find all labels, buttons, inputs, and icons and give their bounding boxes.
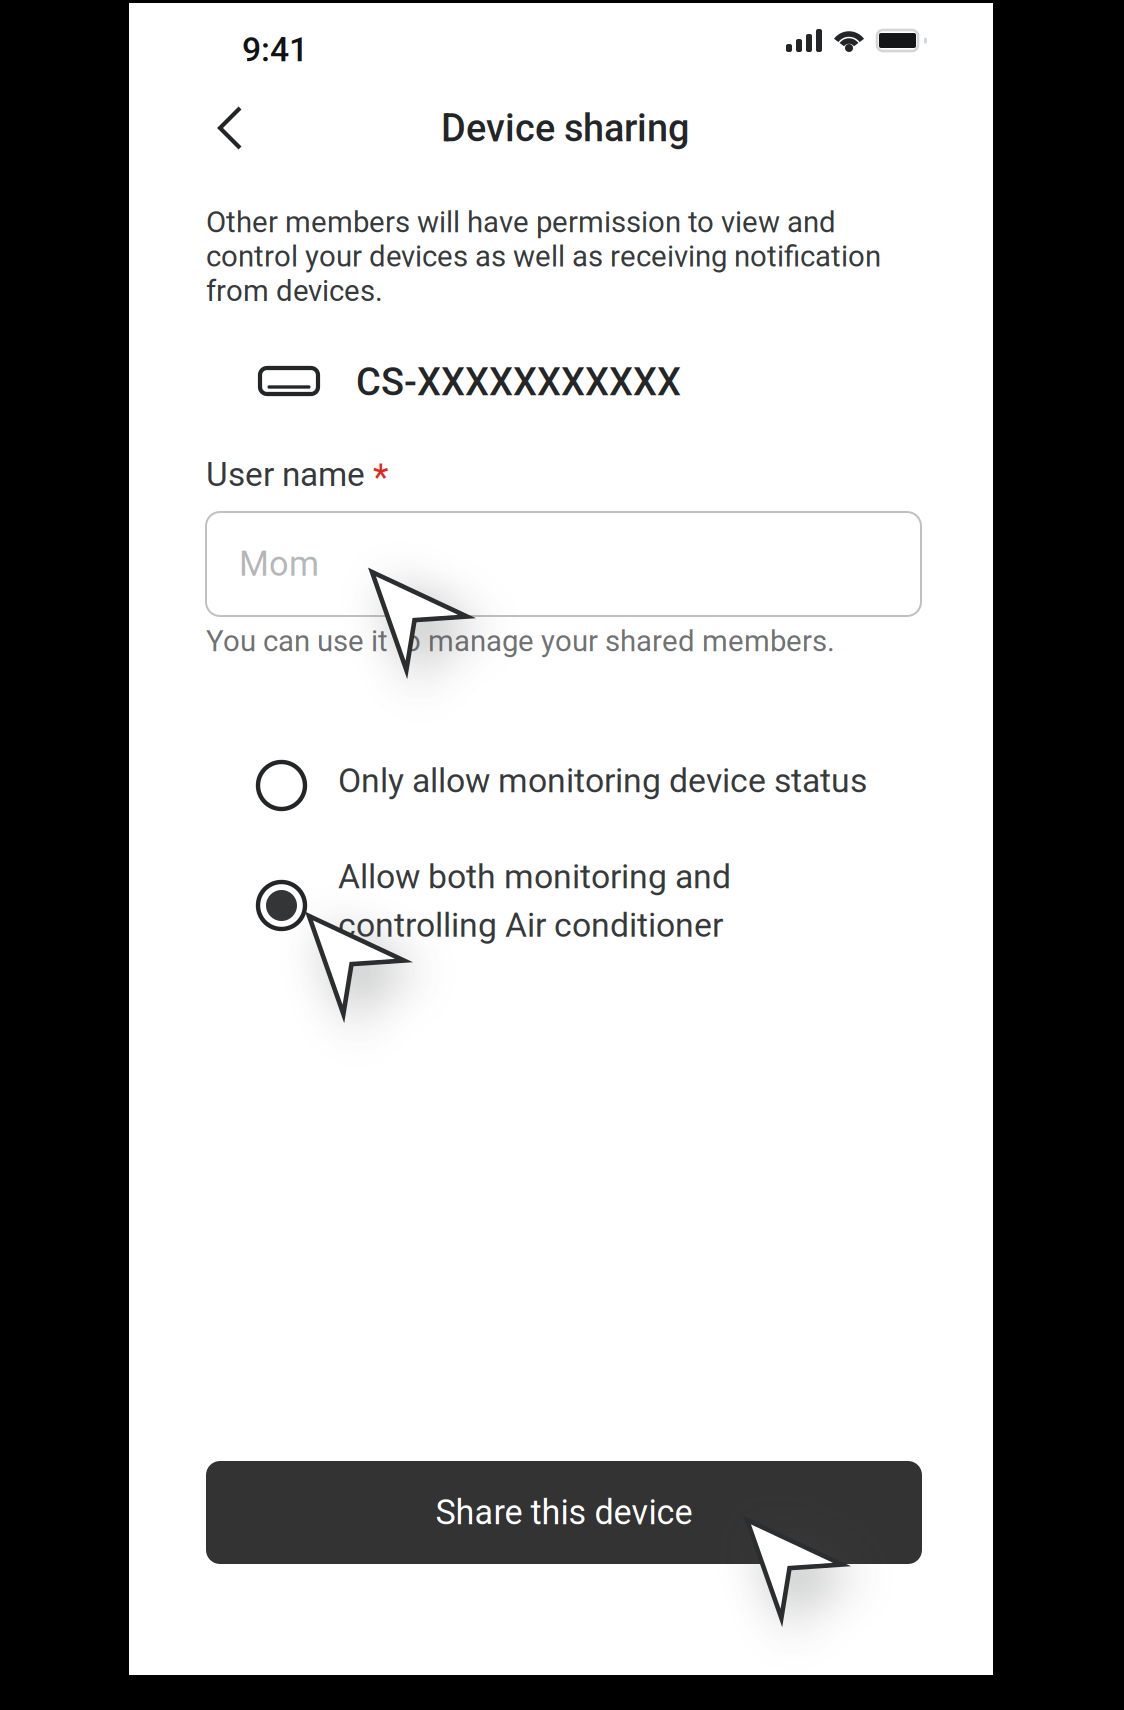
button[interactable]: Back — [188, 86, 272, 170]
staticText: 9:41 — [242, 30, 308, 69]
staticText: Only allow monitoring device status — [338, 761, 867, 800]
staticText: You can use it to manage your shared mem… — [206, 624, 835, 658]
staticText: Mom — [239, 544, 319, 584]
button[interactable]: Share this device — [206, 1461, 922, 1564]
button[interactable]: Mom — [206, 512, 921, 616]
staticText: Device sharing — [441, 106, 689, 150]
staticText: User name — [206, 455, 365, 494]
staticText: Share this device — [435, 1492, 692, 1532]
staticText: Other members will have permission to vi… — [206, 205, 881, 308]
button[interactable]: Only allow monitoring device status — [206, 758, 866, 818]
staticText: * — [373, 456, 389, 498]
button[interactable]: Allow both monitoring and controlling Ai… — [206, 857, 866, 967]
staticText: CS-XXXXXXXXXXX — [356, 360, 681, 404]
staticText: Allow both monitoring and controlling Ai… — [338, 857, 731, 945]
